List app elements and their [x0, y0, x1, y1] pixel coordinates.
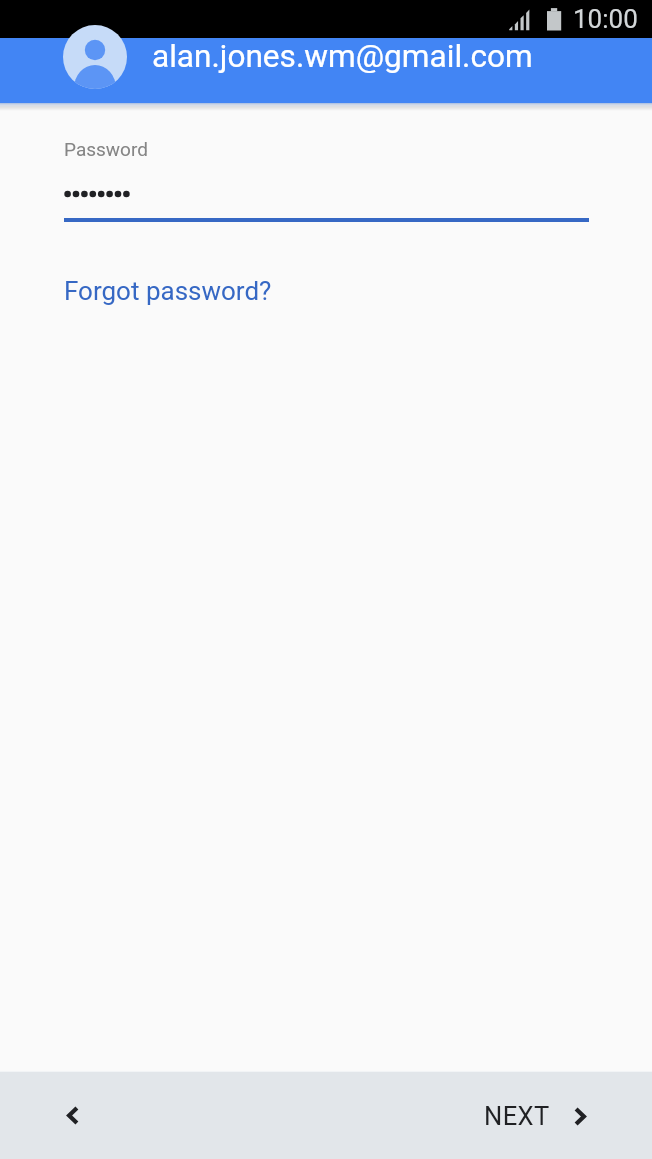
other: Account avatar — [63, 25, 127, 89]
staticText: Password — [64, 138, 148, 160]
button[interactable]: Account avatar — [0, 38, 652, 103]
button[interactable]: Back — [49, 1091, 97, 1139]
staticText: alan.jones.wm@gmail.com — [152, 38, 533, 75]
staticText: NEXT — [484, 1101, 550, 1131]
staticText: Forgot password? — [64, 276, 272, 306]
staticText: 10:00 — [573, 4, 638, 34]
button[interactable]: Forgot password? — [48, 260, 288, 322]
button[interactable]: Password field — [64, 129, 589, 222]
button[interactable]: NEXT — [468, 1090, 602, 1142]
